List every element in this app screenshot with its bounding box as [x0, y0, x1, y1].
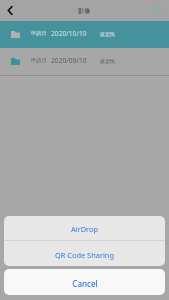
staticText: Cancel — [72, 278, 98, 289]
staticText: 申請日 — [31, 30, 47, 37]
staticText: AirDrop — [71, 224, 98, 234]
staticText: 影像 — [78, 7, 91, 15]
staticText: QR Code Sharing — [55, 250, 114, 260]
staticText: 康老鴨 — [100, 58, 115, 64]
button[interactable]: Share — [151, 0, 169, 21]
staticText: 康老鴨 — [100, 31, 115, 37]
staticText: 2020/10/10 — [51, 29, 87, 38]
button[interactable]: Back — [0, 0, 22, 21]
button[interactable]: 申請日 — [0, 48, 169, 75]
button[interactable]: Cancel — [4, 269, 165, 295]
button[interactable]: AirDrop — [4, 216, 165, 240]
staticText: 申請日 — [31, 57, 47, 64]
button[interactable]: 申請日 — [0, 21, 169, 48]
button[interactable]: QR Code Sharing — [4, 241, 165, 266]
staticText: 2020/09/10 — [51, 56, 87, 65]
